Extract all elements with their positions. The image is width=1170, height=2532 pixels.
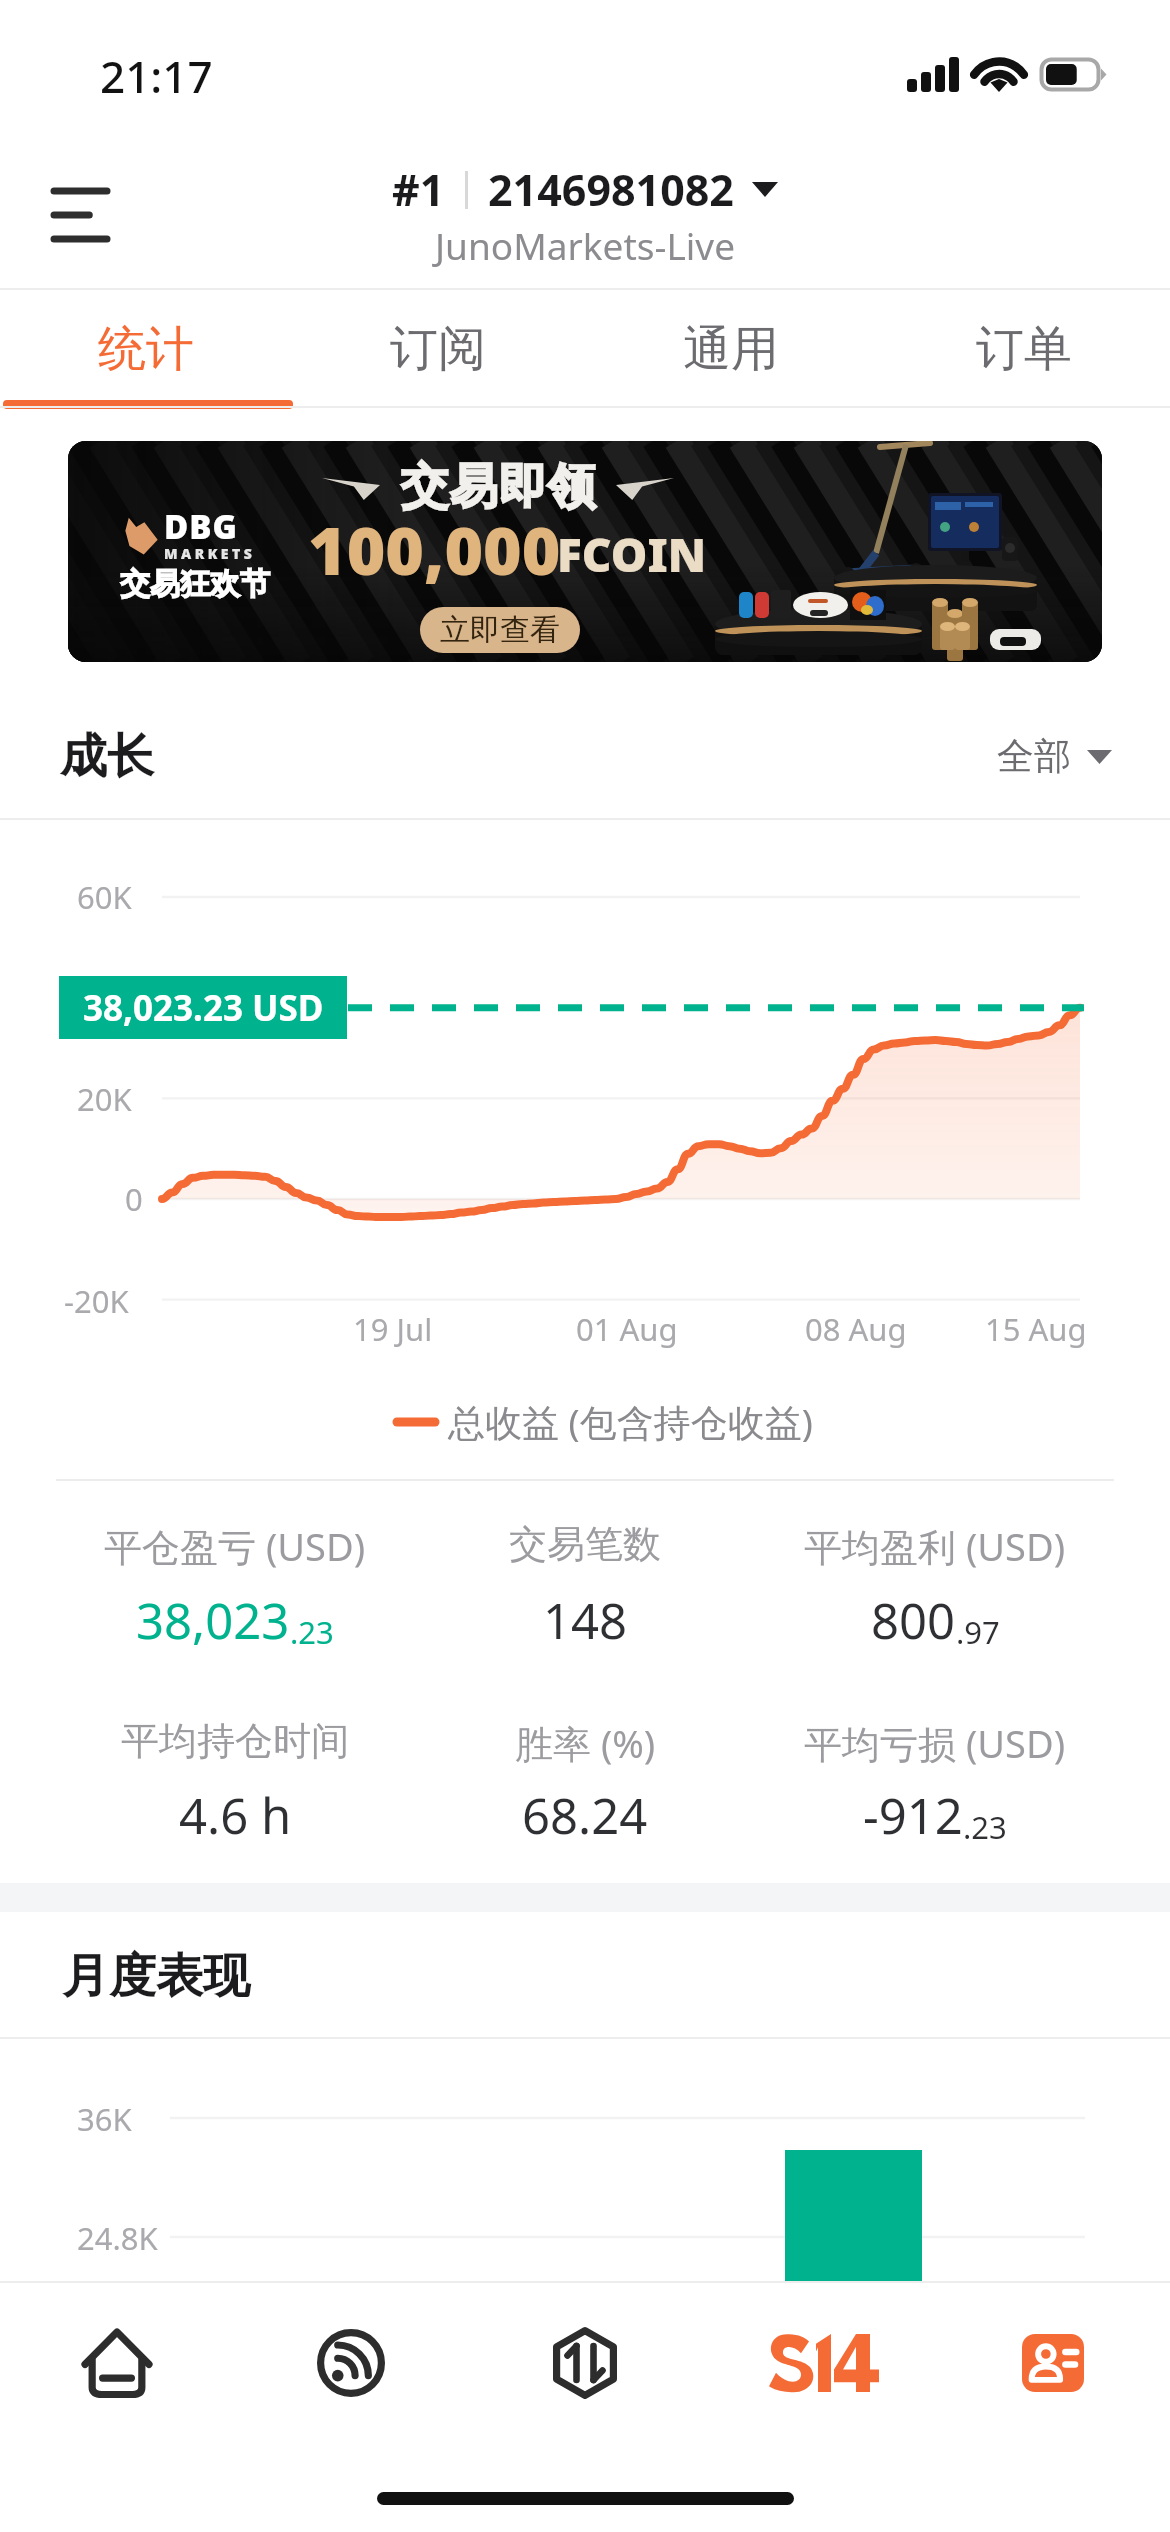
- staticText: 19 Jul: [353, 1308, 433, 1350]
- staticText: 总收益 (包含持仓收益): [448, 1396, 813, 1447]
- staticText: -20K: [64, 1280, 129, 1322]
- button[interactable]: Promotion banner: [68, 441, 1102, 662]
- button[interactable]: Menu: [25, 160, 135, 270]
- staticText: 通用: [683, 319, 779, 379]
- staticText: 01 Aug: [576, 1308, 678, 1350]
- staticText: 36K: [77, 2098, 132, 2140]
- staticText: 15 Aug: [985, 1308, 1087, 1350]
- staticText: #1: [392, 160, 445, 219]
- staticText: 20K: [77, 1078, 132, 1120]
- button[interactable]: 订单: [877, 290, 1170, 408]
- staticText: 24.8K: [77, 2217, 158, 2259]
- staticText: 100,000: [308, 504, 561, 594]
- staticText: .23: [290, 1611, 334, 1653]
- staticText: 68.24: [522, 1782, 648, 1849]
- staticText: DBG: [164, 504, 238, 549]
- button[interactable]: #1: [384, 156, 786, 274]
- button[interactable]: 通用: [584, 290, 877, 408]
- button[interactable]: Signals: [234, 2283, 468, 2443]
- staticText: 38,023: [136, 1587, 290, 1654]
- button[interactable]: S14: [702, 2283, 936, 2443]
- staticText: JunoMarkets-Live: [435, 220, 736, 270]
- staticText: 成长: [60, 727, 154, 786]
- staticText: 平均持仓时间: [121, 1717, 349, 1765]
- staticText: 胜率 (%): [515, 1717, 656, 1769]
- staticText: 0: [125, 1178, 143, 1220]
- staticText: 4.6 h: [179, 1782, 292, 1849]
- staticText: 21:17: [100, 46, 213, 106]
- button[interactable]: Home: [0, 2283, 234, 2443]
- staticText: 2146981082: [488, 160, 734, 219]
- staticText: 立即查看: [440, 611, 560, 649]
- staticText: 平仓盈亏 (USD): [104, 1520, 366, 1572]
- staticText: .97: [956, 1611, 1000, 1653]
- staticText: MARKETS: [164, 544, 256, 563]
- button[interactable]: 全部: [997, 733, 1112, 780]
- staticText: 统计: [98, 319, 194, 379]
- button[interactable]: Profile: [936, 2283, 1170, 2443]
- button[interactable]: 订阅: [292, 290, 584, 408]
- staticText: .23: [963, 1806, 1007, 1848]
- staticText: 平均亏损 (USD): [804, 1717, 1066, 1769]
- staticText: 全部: [997, 733, 1071, 780]
- staticText: 08 Aug: [805, 1308, 907, 1350]
- button[interactable]: 统计: [0, 290, 292, 408]
- staticText: 交易笔数: [509, 1520, 661, 1568]
- staticText: 平均盈利 (USD): [804, 1520, 1066, 1572]
- staticText: 交易狂欢节: [120, 565, 270, 603]
- staticText: 订阅: [390, 319, 486, 379]
- staticText: 800: [871, 1587, 956, 1654]
- button[interactable]: Trade: [468, 2283, 702, 2443]
- staticText: 月度表现: [62, 1947, 250, 2006]
- button[interactable]: 立即查看: [420, 607, 580, 653]
- staticText: FCOIN: [557, 523, 706, 586]
- staticText: 38,023.23 USD: [83, 984, 324, 1032]
- staticText: 订单: [976, 319, 1072, 379]
- staticText: 交易即领: [400, 457, 596, 517]
- staticText: 60K: [77, 876, 132, 918]
- staticText: 148: [543, 1587, 628, 1654]
- staticText: -912: [863, 1782, 963, 1849]
